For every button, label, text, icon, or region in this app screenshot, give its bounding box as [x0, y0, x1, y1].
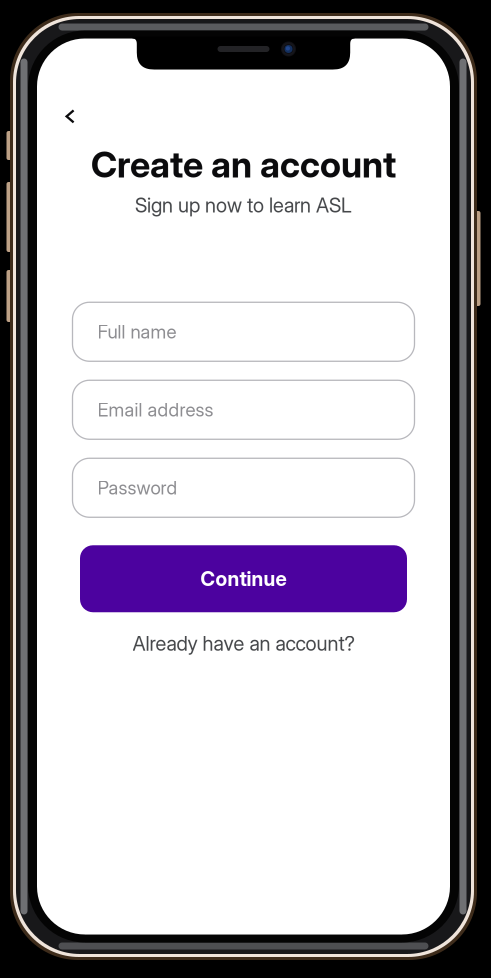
button[interactable]: Continue — [80, 545, 407, 612]
staticText: Continue — [200, 567, 286, 591]
staticText: Full name — [97, 320, 176, 343]
staticText: Password — [97, 476, 177, 499]
staticText: Email address — [97, 398, 213, 421]
staticText: Sign up now to learn ASL — [135, 193, 352, 217]
staticText: Create an account — [91, 142, 396, 186]
staticText: Already have an account? — [132, 631, 354, 655]
button[interactable]: Back — [52, 99, 88, 133]
button[interactable]: Already have an account? — [126, 627, 360, 659]
